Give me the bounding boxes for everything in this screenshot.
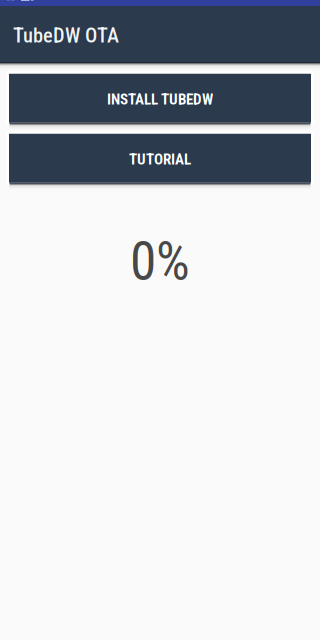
button[interactable]: INSTALL TUBEDW <box>9 74 311 123</box>
staticText: TUTORIAL <box>129 150 191 168</box>
button[interactable]: TUTORIAL <box>9 134 311 183</box>
staticText: TubeDW OTA <box>13 23 119 47</box>
staticText: 0% <box>130 230 190 292</box>
staticText: INSTALL TUBEDW <box>107 90 213 108</box>
